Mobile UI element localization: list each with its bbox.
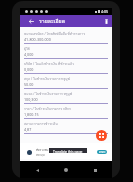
button[interactable]: Recent apps xyxy=(90,165,100,175)
staticText: อังกฤษ xyxy=(36,153,45,158)
staticText: 4:05 xyxy=(101,9,109,14)
staticText: ตกลง xyxy=(99,150,106,154)
staticText: รายละเอียด xyxy=(39,17,66,25)
staticText: หมายเลขบัตร / โทรศัพท์มือถือ ที่ทำรายการ xyxy=(24,31,85,36)
staticText: 1,800.15 xyxy=(24,112,39,117)
button[interactable]: Translate this page xyxy=(49,148,87,153)
button[interactable]: ผู้ใช้ xyxy=(24,46,108,61)
button[interactable]: ราคา / ใบชำระเงินรายการ กสิกร xyxy=(24,106,108,121)
button[interactable]: บริษัท / ใบแจ้งชำระเงิน ที่ชำระแล้ว xyxy=(24,61,108,76)
staticText: ที่ตรวจพบ xyxy=(36,148,49,153)
staticText: บริษัท / ใบแจ้งชำระเงิน ที่ชำระแล้ว xyxy=(24,61,74,66)
button[interactable]: Home xyxy=(61,165,71,175)
staticText: 4,87 xyxy=(24,127,32,132)
button[interactable]: Scan QR code xyxy=(96,130,107,141)
staticText: 4,000 xyxy=(24,52,34,57)
staticText: 100,300 xyxy=(24,97,38,102)
button[interactable]: สกุล / ใบชำระเงินรายการ ทรูมูฟ xyxy=(24,76,108,91)
button[interactable]: ตกลง xyxy=(97,150,107,154)
staticText: ราคา / ใบชำระเงินรายการ กสิกร xyxy=(24,106,71,111)
staticText: 0,000 xyxy=(24,67,34,72)
button[interactable]: Back xyxy=(25,15,37,27)
staticText: ผู้ใช้ xyxy=(24,46,30,51)
button[interactable]: Delete xyxy=(101,15,112,27)
button[interactable]: สถานะรายการชำระเงิน xyxy=(24,121,108,136)
button[interactable]: หมวด / ใบชำระเงินรายการ ทรูมูฟ xyxy=(24,91,108,106)
staticText: สกุล / ใบชำระเงินรายการ ทรูมูฟ xyxy=(24,76,70,81)
staticText: สถานะรายการชำระเงิน xyxy=(24,121,58,126)
button[interactable]: ที่ตรวจพบ xyxy=(20,143,112,159)
button[interactable]: Back xyxy=(32,165,42,175)
staticText: 50.00 xyxy=(24,82,34,87)
staticText: 41-800-300-000 xyxy=(24,37,51,42)
button[interactable]: หมายเลขบัตร / โทรศัพท์มือถือ ที่ทำรายการ xyxy=(24,31,108,46)
staticText: Translate this page xyxy=(53,149,83,153)
staticText: หมวด / ใบชำระเงินรายการ ทรูมูฟ xyxy=(24,91,73,96)
